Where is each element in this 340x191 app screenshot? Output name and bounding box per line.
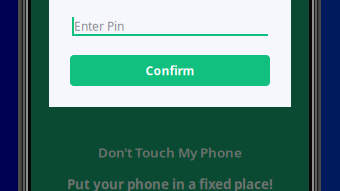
button[interactable]: Confirm xyxy=(70,55,270,86)
button[interactable]: Enter Pin xyxy=(72,16,268,36)
staticText: Confirm xyxy=(145,62,194,78)
staticText: Put your phone in a fixed place! xyxy=(67,175,273,191)
staticText: Don't Touch My Phone xyxy=(98,144,242,161)
staticText: Enter Pin xyxy=(74,18,124,34)
